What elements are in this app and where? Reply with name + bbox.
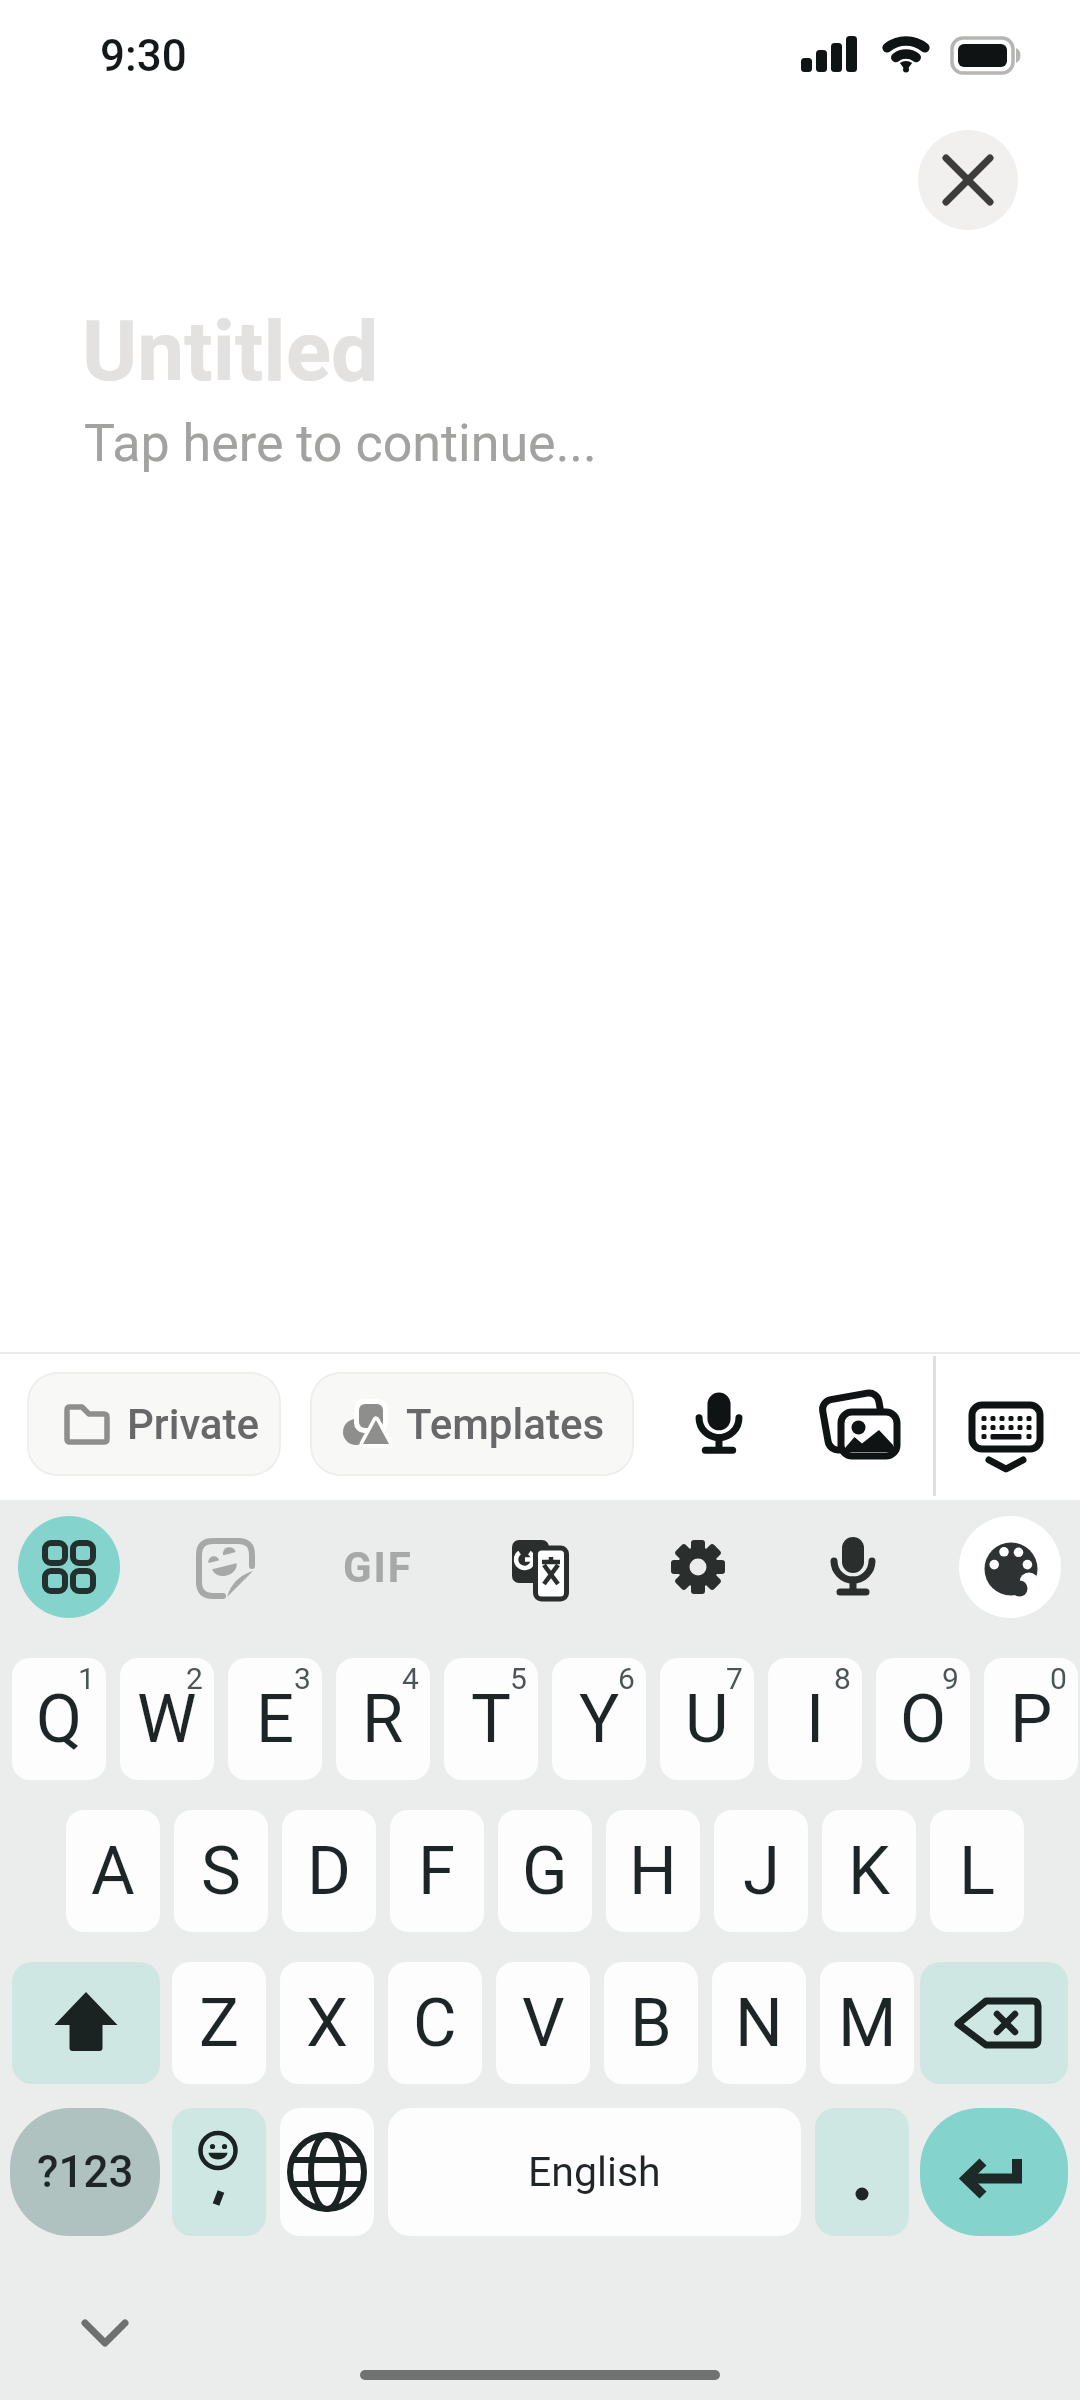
button[interactable] (920, 1962, 1068, 2084)
button[interactable]: B (604, 1962, 698, 2084)
staticText: W (137, 1680, 197, 1759)
staticText: J (743, 1832, 780, 1911)
staticText: GIF (343, 1543, 413, 1592)
button[interactable]: O (876, 1658, 970, 1780)
staticText: K (848, 1832, 891, 1911)
button[interactable]: F (390, 1810, 484, 1932)
staticText: S (201, 1832, 241, 1911)
button[interactable]: Y (552, 1658, 646, 1780)
button[interactable]: A (66, 1810, 160, 1932)
button[interactable]: Z (172, 1962, 266, 2084)
staticText: ?123 (37, 2146, 134, 2198)
staticText: F (418, 1832, 456, 1911)
button[interactable]: L (930, 1810, 1024, 1932)
button[interactable] (280, 2108, 374, 2236)
button[interactable]: ?123 (10, 2108, 160, 2236)
staticText: 3 (294, 1661, 311, 1696)
button[interactable] (488, 1517, 588, 1617)
staticText: M (838, 1984, 897, 2063)
staticText: Tap here to continue... (84, 413, 597, 474)
staticText: D (307, 1832, 351, 1911)
button[interactable] (803, 1517, 903, 1617)
staticText: X (306, 1984, 349, 2063)
button[interactable]: Templates (310, 1372, 634, 1476)
staticText: 5 (510, 1661, 527, 1696)
button[interactable] (918, 130, 1018, 230)
button[interactable] (920, 2108, 1068, 2236)
staticText: H (629, 1832, 677, 1911)
staticText: Z (199, 1984, 240, 2063)
button[interactable]: C (388, 1962, 482, 2084)
button[interactable]: P (984, 1658, 1078, 1780)
staticText: 1 (78, 1661, 95, 1696)
staticText: 9:30 (100, 30, 187, 82)
staticText: 0 (1050, 1661, 1067, 1696)
staticText: T (471, 1680, 511, 1759)
staticText: C (413, 1984, 457, 2063)
staticText: G (522, 1832, 568, 1911)
staticText: A (91, 1832, 135, 1911)
button[interactable] (18, 1516, 120, 1618)
button[interactable] (173, 1517, 273, 1617)
button[interactable] (812, 1374, 912, 1474)
staticText: L (959, 1832, 996, 1911)
staticText: Y (579, 1680, 620, 1759)
staticText: English (528, 2148, 661, 2196)
staticText: R (362, 1680, 404, 1759)
button[interactable] (648, 1517, 748, 1617)
button[interactable] (65, 2303, 145, 2363)
button[interactable] (959, 1516, 1061, 1618)
button[interactable]: Q (12, 1658, 106, 1780)
staticText: 9 (942, 1661, 959, 1696)
button[interactable] (172, 2108, 266, 2236)
button[interactable]: X (280, 1962, 374, 2084)
staticText: 6 (618, 1661, 635, 1696)
button[interactable]: D (282, 1810, 376, 1932)
button[interactable]: U (660, 1658, 754, 1780)
button[interactable] (12, 1962, 160, 2084)
button[interactable]: G (498, 1810, 592, 1932)
staticText: B (630, 1984, 672, 2063)
button[interactable]: GIF (328, 1517, 428, 1617)
button[interactable]: R (336, 1658, 430, 1780)
button[interactable]: W (120, 1658, 214, 1780)
button[interactable]: E (228, 1658, 322, 1780)
staticText: O (900, 1680, 947, 1759)
staticText: V (522, 1984, 565, 2063)
staticText: E (256, 1680, 295, 1759)
button[interactable]: H (606, 1810, 700, 1932)
button[interactable]: T (444, 1658, 538, 1780)
button[interactable]: J (714, 1810, 808, 1932)
button[interactable]: English (388, 2108, 801, 2236)
button[interactable] (669, 1374, 769, 1474)
button[interactable]: N (712, 1962, 806, 2084)
staticText: 8 (834, 1661, 851, 1696)
button[interactable]: M (820, 1962, 914, 2084)
staticText: Q (36, 1680, 83, 1759)
staticText: 7 (726, 1661, 743, 1696)
button[interactable]: Private (27, 1372, 281, 1476)
staticText: Untitled (82, 302, 379, 400)
button[interactable]: I (768, 1658, 862, 1780)
staticText: P (1010, 1680, 1053, 1759)
staticText: U (685, 1680, 729, 1759)
button[interactable]: V (496, 1962, 590, 2084)
button[interactable]: S (174, 1810, 268, 1932)
staticText: Private (127, 1400, 260, 1449)
button[interactable] (955, 1372, 1055, 1476)
staticText: 4 (402, 1661, 419, 1696)
staticText: I (806, 1680, 825, 1759)
button[interactable]: K (822, 1810, 916, 1932)
button[interactable] (815, 2108, 909, 2236)
staticText: 2 (186, 1661, 203, 1696)
staticText: N (735, 1984, 783, 2063)
staticText: Templates (406, 1400, 605, 1449)
